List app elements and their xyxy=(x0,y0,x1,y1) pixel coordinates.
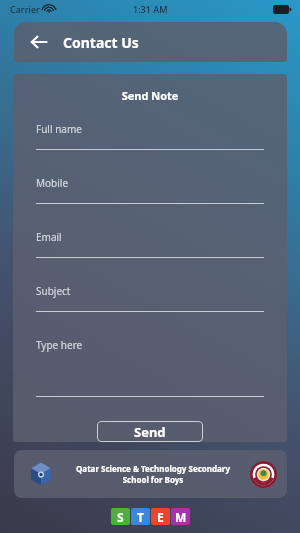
staticText: Full name xyxy=(36,122,82,136)
button[interactable]: Qatar Science & Technology Secondary Sch… xyxy=(14,450,287,498)
staticText: Type here xyxy=(36,338,83,352)
staticText: Subject xyxy=(36,284,71,298)
staticText: S xyxy=(117,509,124,525)
staticText: Mobile xyxy=(36,176,69,190)
staticText: Send Note xyxy=(36,88,264,103)
button[interactable]: STEM xyxy=(111,508,190,525)
button[interactable]: Back xyxy=(22,25,56,59)
staticText: E xyxy=(157,509,164,525)
staticText: T xyxy=(137,509,144,525)
button[interactable]: Type here xyxy=(36,338,264,397)
staticText: Send xyxy=(134,423,166,441)
button[interactable]: Mobile xyxy=(36,176,264,204)
staticText: Carrier xyxy=(10,3,40,15)
staticText: Email xyxy=(36,230,62,244)
button[interactable]: Full name xyxy=(36,122,264,150)
staticText: M xyxy=(175,509,187,525)
button[interactable]: Email xyxy=(36,230,264,258)
staticText: Contact Us xyxy=(63,33,139,52)
button[interactable]: Send xyxy=(97,421,203,442)
button[interactable]: Subject xyxy=(36,284,264,312)
staticText: Qatar Science & Technology Secondary Sch… xyxy=(60,463,246,485)
staticText: 1:31 AM xyxy=(133,3,168,15)
